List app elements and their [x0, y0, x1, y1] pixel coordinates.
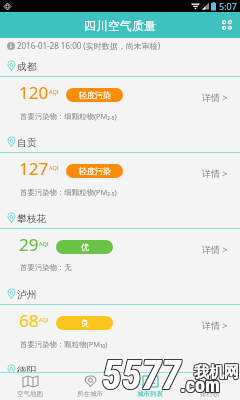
button[interactable]: 空气地图	[0, 373, 60, 400]
button[interactable]: 成都	[0, 57, 240, 133]
staticText: AQI	[49, 88, 59, 95]
staticText: 详情 >	[202, 243, 228, 255]
staticText: 我机网	[193, 364, 238, 383]
staticText: 泸州	[17, 289, 37, 301]
staticText: .com	[181, 372, 221, 395]
staticText: 我机网	[194, 362, 239, 381]
staticText: 成都	[17, 61, 37, 73]
staticText: 5:07	[219, 0, 237, 12]
staticText: 首要污染物：颗粒物(PM₁₀)	[20, 339, 108, 349]
staticText: .com	[181, 373, 221, 396]
staticText: 5577	[102, 352, 181, 399]
button[interactable]: 城市列表	[120, 373, 180, 400]
button[interactable]: 攀枝花	[0, 209, 240, 285]
staticText: 首要污染物：细颗粒物(PM₂.₅)	[20, 187, 117, 197]
staticText: 自贡	[17, 137, 37, 149]
staticText: .com	[179, 372, 219, 395]
staticText: 我机网	[195, 364, 240, 383]
staticText: 120	[19, 81, 49, 104]
staticText: 我机网	[193, 362, 238, 381]
staticText: 所在城市	[77, 390, 103, 398]
staticText: 我机网	[194, 364, 239, 383]
button[interactable]: 自贡	[0, 133, 240, 209]
staticText: .com	[179, 373, 219, 396]
staticText: 优	[81, 242, 89, 252]
staticText: AQI	[49, 164, 59, 171]
staticText: 5577	[103, 353, 182, 400]
staticText: 我机网	[193, 363, 238, 382]
staticText: 城市列表	[137, 390, 163, 398]
staticText: 29	[19, 233, 39, 256]
button[interactable]: 泸州	[0, 285, 240, 361]
staticText: 排行榜	[200, 390, 220, 398]
staticText: 轻度污染	[79, 90, 111, 100]
staticText: 我机网	[195, 362, 240, 381]
staticText: 首要污染物：无	[20, 263, 72, 272]
button[interactable]: 所在城市	[60, 373, 120, 400]
staticText: 5577	[101, 351, 180, 398]
staticText: 127	[19, 157, 49, 180]
staticText: 68	[19, 309, 39, 332]
staticText: .com	[181, 374, 221, 397]
staticText: 我机网	[194, 363, 239, 382]
staticText: 5577	[101, 353, 180, 400]
button[interactable]: 德阳	[0, 361, 240, 381]
button[interactable]: 排行榜	[180, 373, 240, 400]
staticText: 详情 >	[202, 319, 228, 331]
staticText: .com	[180, 374, 220, 397]
staticText: .com	[180, 372, 220, 395]
staticText: AQI	[39, 316, 49, 323]
staticText: 2016-01-28 16:00 (实时数据，尚未审核)	[17, 40, 161, 51]
staticText: 5577	[103, 352, 182, 399]
staticText: 5577	[102, 351, 181, 398]
staticText: .com	[180, 373, 220, 396]
staticText: 详情 >	[202, 167, 228, 179]
staticText: 轻度污染	[79, 166, 111, 176]
staticText: 攀枝花	[17, 213, 47, 225]
staticText: 详情 >	[202, 91, 228, 103]
staticText: 良	[81, 318, 89, 328]
staticText: 5577	[101, 352, 180, 399]
staticText: 四川空气质量	[84, 18, 156, 33]
staticText: AQI	[39, 240, 49, 247]
staticText: 德阳	[17, 365, 37, 377]
staticText: 首要污染物：细颗粒物(PM₂.₅)	[20, 111, 117, 121]
staticText: 我机网	[195, 363, 240, 382]
button[interactable]: Grid view	[218, 16, 236, 34]
staticText: .com	[179, 374, 219, 397]
staticText: 5577	[103, 351, 182, 398]
staticText: 5577	[102, 353, 181, 400]
staticText: 空气地图	[17, 390, 43, 398]
